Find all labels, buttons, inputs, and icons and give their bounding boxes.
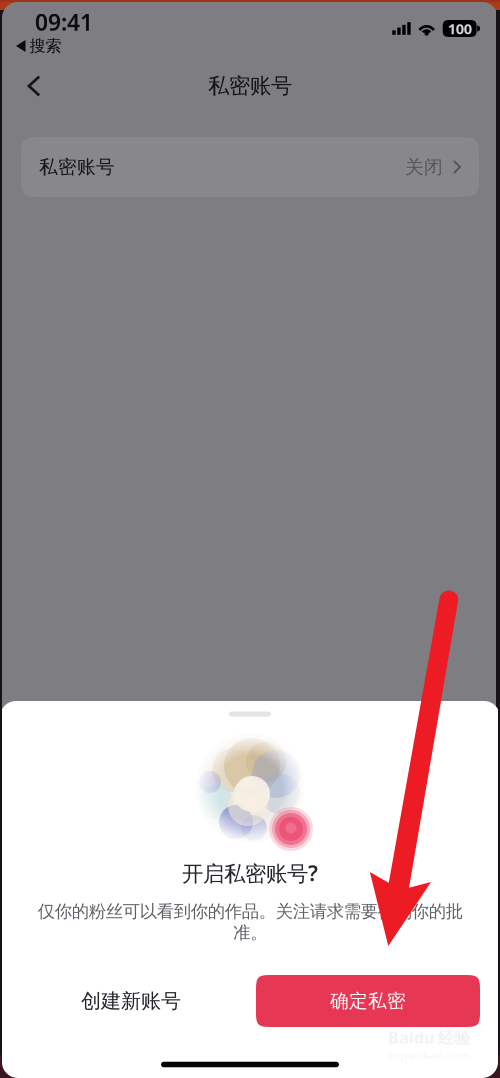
button[interactable]: 确定私密 xyxy=(256,975,480,1027)
staticText: 私密账号 xyxy=(208,73,292,99)
staticText: 100 xyxy=(448,19,472,38)
staticText: 搜索 xyxy=(29,36,61,56)
staticText: Baidu 经验 xyxy=(388,1027,470,1048)
staticText: 确定私密 xyxy=(330,989,406,1012)
staticText: 私密账号 xyxy=(39,155,115,178)
staticText: 开启私密账号? xyxy=(182,859,318,887)
button[interactable]: 创建新账号 xyxy=(21,975,241,1027)
staticText: 创建新账号 xyxy=(81,989,181,1013)
button[interactable]: 私密账号 xyxy=(21,137,479,197)
staticText: 关闭 xyxy=(405,155,443,178)
staticText: 仅你的粉丝可以看到你的作品。关注请求需要得到你的批准。 xyxy=(37,901,462,943)
button[interactable]: 返回 xyxy=(8,63,60,109)
button[interactable]: 返回搜索 xyxy=(16,35,72,57)
staticText: 09:41 xyxy=(35,7,93,37)
